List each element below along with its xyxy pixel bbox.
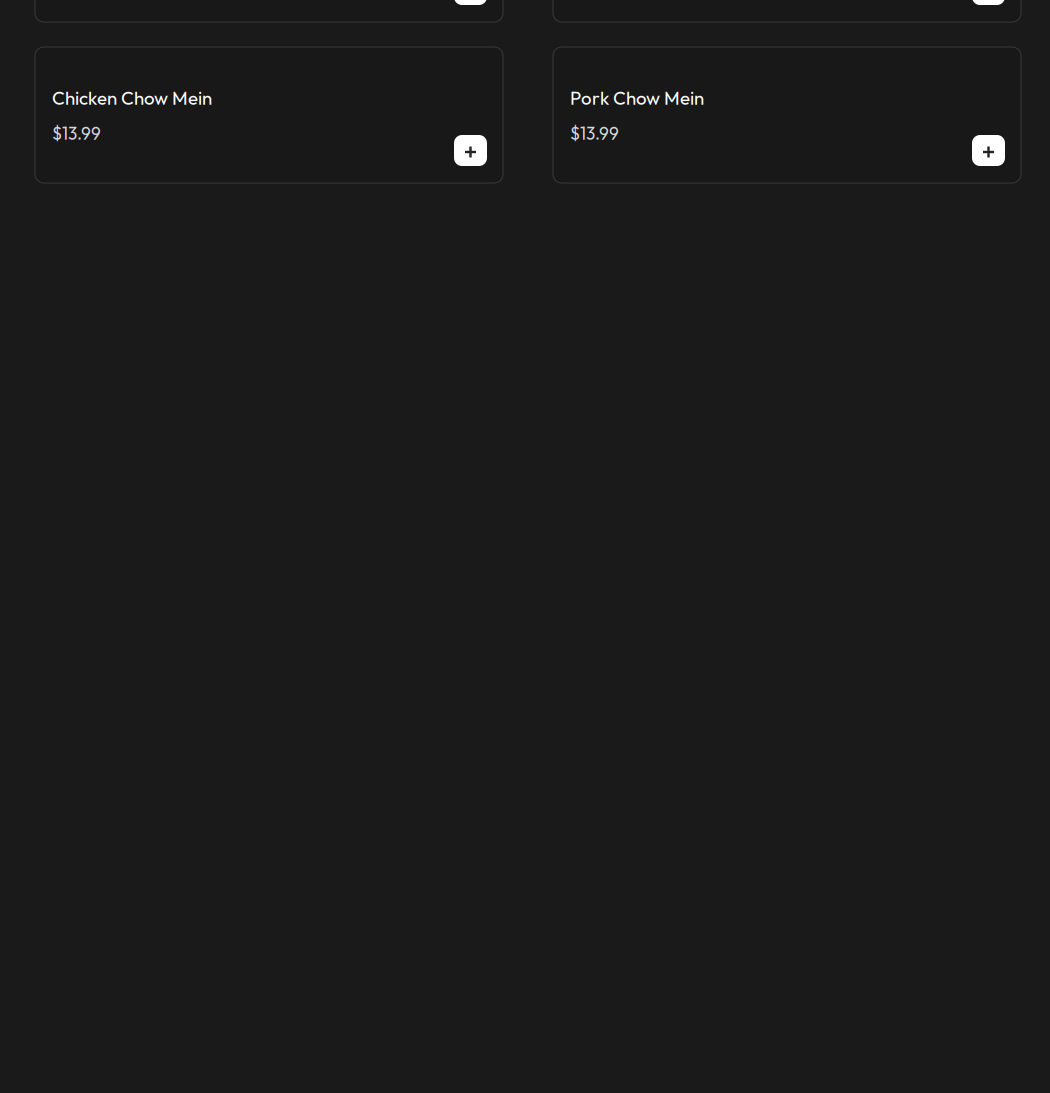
staticText: $13.99 (52, 122, 101, 144)
button[interactable]: Beef Chow Mein (35, 0, 503, 22)
button[interactable]: Add Chicken Chow Mein to order (454, 135, 487, 166)
button[interactable]: Add Shrimp Chow Mein to order (972, 0, 1005, 5)
button[interactable]: Shrimp Chow Mein (553, 0, 1021, 22)
button[interactable]: Pork Chow Mein (553, 47, 1021, 183)
button[interactable]: Add Pork Chow Mein to order (972, 135, 1005, 166)
staticText: $13.99 (570, 122, 619, 144)
staticText: Pork Chow Mein (570, 86, 704, 109)
button[interactable]: Chicken Chow Mein (35, 47, 503, 183)
button[interactable]: Add Beef Chow Mein to order (454, 0, 487, 5)
staticText: Chicken Chow Mein (52, 86, 212, 109)
